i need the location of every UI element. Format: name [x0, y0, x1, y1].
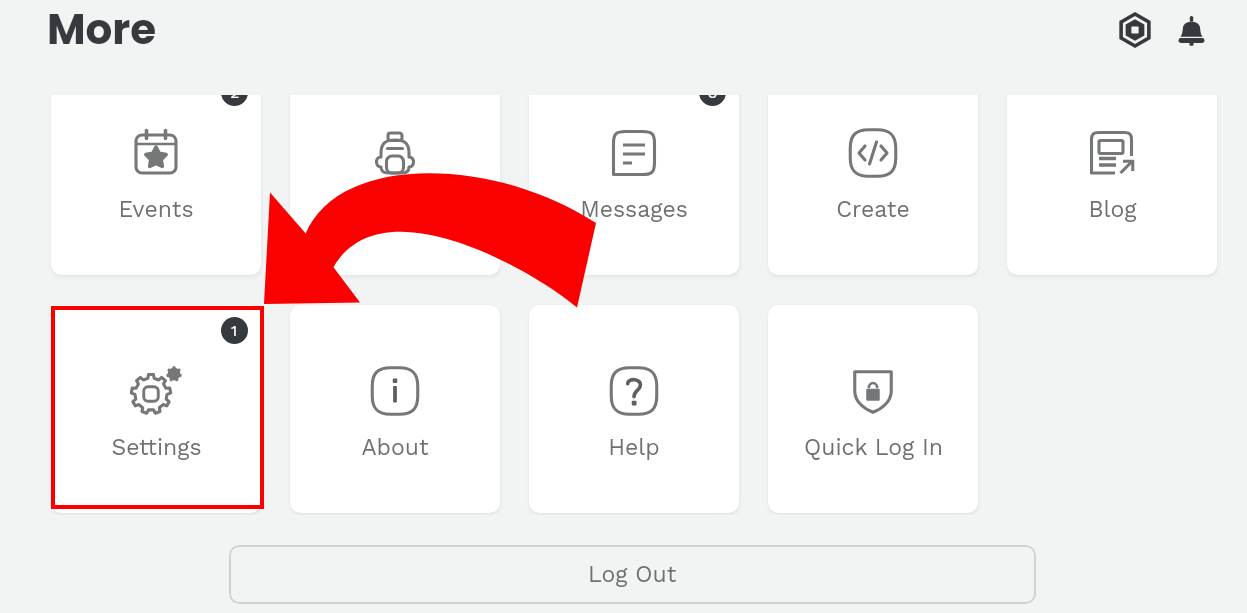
staticText: Log Out [588, 561, 677, 588]
staticText: 2 [230, 95, 240, 102]
staticText: Blog [1088, 196, 1137, 223]
button[interactable]: About [290, 305, 500, 513]
button[interactable]: Blog [1007, 95, 1217, 275]
staticText: Events [118, 196, 194, 223]
staticText: Quick Log In [804, 434, 943, 461]
button[interactable]: Backpack [290, 95, 500, 275]
staticText: Messages [580, 196, 688, 223]
staticText: Settings [111, 434, 202, 461]
staticText: More [47, 0, 157, 59]
staticText: Create [836, 196, 910, 223]
button[interactable]: Log Out [229, 545, 1036, 604]
button[interactable]: Notifications [1167, 6, 1215, 54]
staticText: Help [608, 434, 660, 461]
staticText: About [361, 434, 429, 461]
button[interactable]: Events [51, 95, 261, 275]
button[interactable]: Help [529, 305, 739, 513]
staticText: 3 [708, 95, 718, 102]
staticText: 1 [231, 321, 238, 340]
button[interactable]: Settings [51, 305, 261, 513]
button[interactable]: Rewards [1111, 6, 1159, 54]
button[interactable]: Create [768, 95, 978, 275]
button[interactable]: Quick Log In [768, 305, 978, 513]
button[interactable]: Messages [529, 95, 739, 275]
